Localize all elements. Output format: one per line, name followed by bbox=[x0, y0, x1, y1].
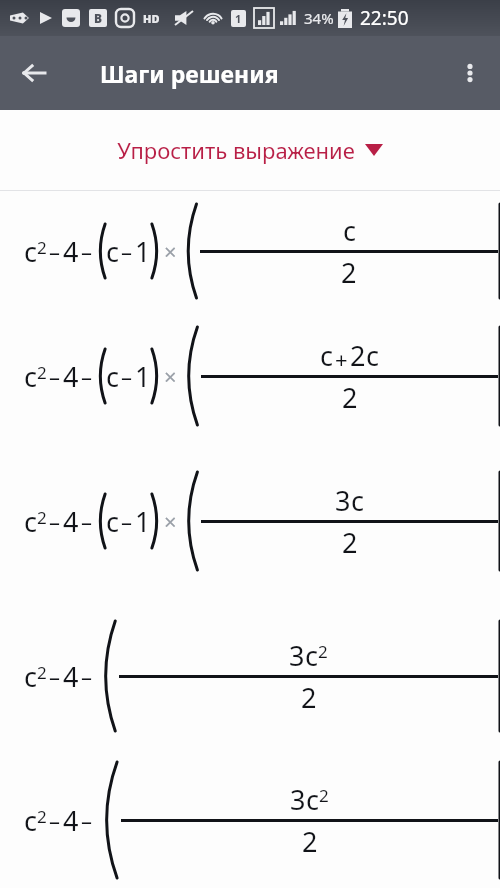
button[interactable]: c bbox=[0, 311, 500, 441]
staticText: 2 bbox=[301, 679, 317, 716]
staticText: 4 bbox=[63, 802, 79, 839]
staticText: 2 bbox=[342, 524, 358, 561]
staticText: 2 bbox=[37, 805, 47, 828]
staticText: 1 bbox=[235, 11, 242, 26]
staticText: – bbox=[81, 506, 93, 536]
staticText: c bbox=[366, 337, 379, 374]
staticText: B bbox=[94, 10, 103, 26]
staticText: c bbox=[24, 658, 37, 695]
staticText: 4 bbox=[63, 503, 79, 540]
staticText: × bbox=[164, 236, 177, 266]
staticText: – bbox=[121, 506, 133, 536]
staticText: 3 bbox=[335, 482, 351, 519]
staticText: c bbox=[343, 212, 356, 249]
staticText: c bbox=[24, 233, 37, 270]
staticText: c bbox=[106, 358, 119, 395]
staticText: 1 bbox=[135, 358, 151, 395]
staticText: – bbox=[121, 236, 133, 266]
staticText: c bbox=[305, 637, 318, 674]
button[interactable]: Упростить выражение bbox=[0, 110, 500, 190]
staticText: Шаги решения bbox=[100, 58, 279, 89]
button[interactable]: Ещё bbox=[446, 49, 494, 97]
staticText: 4 bbox=[63, 358, 79, 395]
staticText: 2 bbox=[342, 379, 358, 416]
staticText: × bbox=[164, 506, 177, 536]
button[interactable]: c bbox=[0, 191, 500, 311]
staticText: – bbox=[81, 361, 93, 391]
staticText: c bbox=[351, 482, 364, 519]
staticText: 2 bbox=[318, 640, 328, 663]
staticText: 3 bbox=[290, 781, 306, 818]
staticText: c bbox=[320, 337, 333, 374]
staticText: + bbox=[335, 344, 348, 374]
staticText: 3 bbox=[289, 637, 305, 674]
staticText: c bbox=[24, 358, 37, 395]
staticText: 1 bbox=[135, 233, 151, 270]
staticText: – bbox=[81, 661, 93, 691]
staticText: c bbox=[24, 802, 37, 839]
staticText: – bbox=[49, 361, 61, 391]
staticText: – bbox=[49, 236, 61, 266]
staticText: 2 bbox=[319, 784, 329, 807]
staticText: 22:50 bbox=[360, 5, 409, 31]
staticText: 2 bbox=[37, 236, 47, 259]
staticText: – bbox=[81, 805, 93, 835]
button[interactable]: c bbox=[0, 601, 500, 751]
staticText: 2 bbox=[341, 254, 357, 291]
staticText: 2 bbox=[37, 361, 47, 384]
staticText: HD bbox=[143, 11, 160, 26]
staticText: 2 bbox=[350, 337, 366, 374]
button[interactable]: Назад bbox=[8, 47, 60, 99]
staticText: – bbox=[81, 236, 93, 266]
staticText: c bbox=[106, 503, 119, 540]
staticText: 4 bbox=[63, 658, 79, 695]
staticText: Упростить выражение bbox=[117, 135, 355, 165]
staticText: – bbox=[49, 506, 61, 536]
staticText: 2 bbox=[37, 506, 47, 529]
button[interactable]: c bbox=[0, 751, 500, 888]
staticText: 4 bbox=[63, 233, 79, 270]
staticText: 2 bbox=[302, 823, 318, 860]
staticText: × bbox=[164, 361, 177, 391]
staticText: c bbox=[106, 233, 119, 270]
staticText: 2 bbox=[37, 661, 47, 684]
staticText: – bbox=[121, 361, 133, 391]
staticText: 34% bbox=[304, 8, 334, 28]
staticText: – bbox=[49, 661, 61, 691]
staticText: c bbox=[24, 503, 37, 540]
button[interactable]: c bbox=[0, 441, 500, 601]
staticText: – bbox=[49, 805, 61, 835]
staticText: c bbox=[306, 781, 319, 818]
staticText: 1 bbox=[135, 503, 151, 540]
